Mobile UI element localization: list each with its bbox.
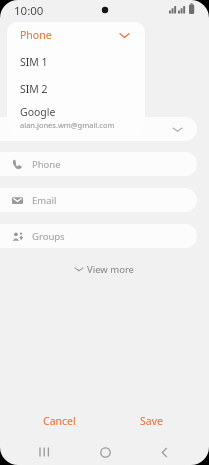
button[interactable]: Cancel (24, 410, 94, 432)
button[interactable]: Phone (7, 22, 145, 48)
staticText: Email (32, 194, 57, 207)
button[interactable]: Save (120, 410, 182, 432)
button[interactable]: Recent apps (30, 439, 60, 465)
staticText: SIM 2 (20, 82, 48, 96)
staticText: View more (87, 263, 134, 276)
button[interactable]: Google (7, 102, 145, 135)
staticText: Cancel (43, 414, 76, 428)
staticText: SIM 1 (20, 55, 48, 69)
button[interactable]: SIM 1 (7, 48, 145, 75)
staticText: alan.jones.wm@gmail.com (20, 120, 115, 130)
button[interactable] (0, 117, 197, 141)
staticText: Phone (20, 28, 52, 42)
button[interactable]: View more (0, 260, 209, 278)
staticText: Save (140, 414, 163, 428)
button[interactable]: Home (90, 439, 120, 465)
staticText: Phone (32, 158, 61, 171)
button[interactable]: Phone (0, 152, 197, 176)
staticText: Google (20, 105, 56, 119)
button[interactable]: Email (0, 188, 197, 212)
button[interactable]: Back (149, 439, 179, 465)
staticText: 10:00 (14, 3, 44, 19)
button[interactable]: SIM 2 (7, 75, 145, 102)
staticText: Groups (32, 230, 65, 243)
button[interactable]: Groups (0, 224, 197, 248)
